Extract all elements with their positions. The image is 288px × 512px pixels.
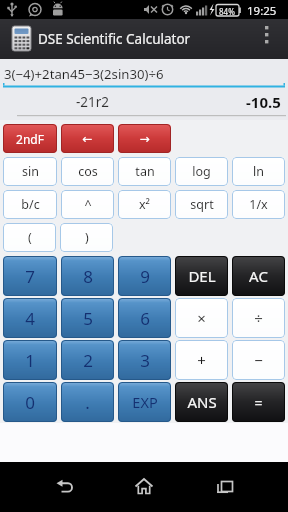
button[interactable]: 3 — [118, 340, 171, 380]
button[interactable] — [196, 462, 254, 512]
staticText: ^ — [84, 196, 92, 213]
button[interactable]: 0 — [3, 382, 57, 422]
staticText: 7 — [25, 265, 35, 288]
button[interactable]: ← — [61, 124, 114, 153]
staticText: 1 — [25, 349, 35, 372]
button[interactable]: sqrt — [175, 190, 228, 219]
staticText: tan — [135, 163, 155, 180]
staticText: 19:25 — [247, 3, 277, 19]
staticText: 3 — [140, 349, 150, 372]
staticText: DEL — [188, 266, 216, 286]
staticText: + — [197, 350, 206, 370]
staticText: → — [139, 132, 150, 146]
button[interactable]: EXP — [118, 382, 171, 422]
staticText: AC — [249, 266, 268, 286]
staticText: -21r2 — [76, 93, 110, 111]
button[interactable] — [36, 462, 94, 512]
button[interactable]: 2ndF — [3, 124, 57, 153]
staticText: -10.5 — [246, 92, 281, 112]
button[interactable]: → — [118, 124, 171, 153]
button[interactable]: . — [61, 382, 114, 422]
staticText: ÷ — [254, 308, 263, 328]
staticText: 84% — [219, 6, 235, 17]
staticText: ← — [82, 132, 93, 146]
button[interactable]: DEL — [175, 256, 228, 296]
staticText: 0 — [25, 391, 35, 414]
staticText: 2ndF — [16, 131, 44, 147]
staticText: log — [192, 163, 211, 180]
button[interactable]: 8 — [61, 256, 114, 296]
staticText: 9 — [140, 265, 150, 288]
button[interactable]: sin — [3, 157, 57, 186]
button[interactable]: 5 — [61, 298, 114, 338]
staticText: x² — [139, 196, 150, 213]
button[interactable]: tan — [118, 157, 171, 186]
staticText: DSE Scientific Calculator — [38, 30, 191, 48]
staticText: = — [254, 393, 263, 412]
button[interactable]: = — [232, 382, 285, 422]
button[interactable]: 1 — [3, 340, 57, 380]
staticText: . — [85, 391, 90, 414]
staticText: 8 — [83, 265, 93, 288]
button[interactable]: AC — [232, 256, 285, 296]
staticText: 6 — [140, 307, 150, 330]
button[interactable]: 6 — [118, 298, 171, 338]
button[interactable]: 9 — [118, 256, 171, 296]
button[interactable]: DSE Scientific Calculator — [0, 19, 288, 59]
button[interactable]: 1/x — [232, 190, 285, 219]
button[interactable]: x² — [118, 190, 171, 219]
staticText: 2 — [83, 349, 93, 372]
button[interactable]: × — [175, 298, 228, 338]
staticText: sin — [22, 163, 39, 180]
button[interactable]: 4 — [3, 298, 57, 338]
button[interactable]: ÷ — [232, 298, 285, 338]
button[interactable]: log — [175, 157, 228, 186]
button[interactable]: b/c — [3, 190, 57, 219]
staticText: ) — [85, 229, 89, 246]
button[interactable]: cos — [61, 157, 114, 186]
staticText: cos — [78, 163, 98, 180]
staticText: × — [197, 308, 206, 328]
button[interactable]: ( — [3, 223, 56, 252]
staticText: b/c — [21, 196, 40, 213]
button[interactable]: 7 — [3, 256, 57, 296]
button[interactable]: 2 — [61, 340, 114, 380]
staticText: ln — [253, 163, 264, 180]
button[interactable] — [258, 19, 288, 59]
button[interactable] — [115, 462, 173, 512]
button[interactable]: ln — [232, 157, 285, 186]
staticText: 1/x — [249, 196, 268, 213]
button[interactable]: − — [232, 340, 285, 380]
button[interactable]: + — [175, 340, 228, 380]
button[interactable]: 3(−4)+2tan45−3(2sin30)÷6 — [0, 59, 288, 88]
staticText: EXP — [132, 392, 158, 412]
staticText: − — [254, 350, 263, 370]
staticText: 5 — [83, 307, 93, 330]
staticText: sqrt — [190, 196, 214, 213]
staticText: 3(−4)+2tan45−3(2sin30)÷6 — [4, 65, 164, 83]
staticText: 4 — [25, 307, 35, 330]
button[interactable]: ) — [60, 223, 113, 252]
staticText: ANS — [187, 392, 217, 412]
button[interactable]: ANS — [175, 382, 228, 422]
staticText: ( — [28, 229, 32, 246]
button[interactable]: ^ — [61, 190, 114, 219]
